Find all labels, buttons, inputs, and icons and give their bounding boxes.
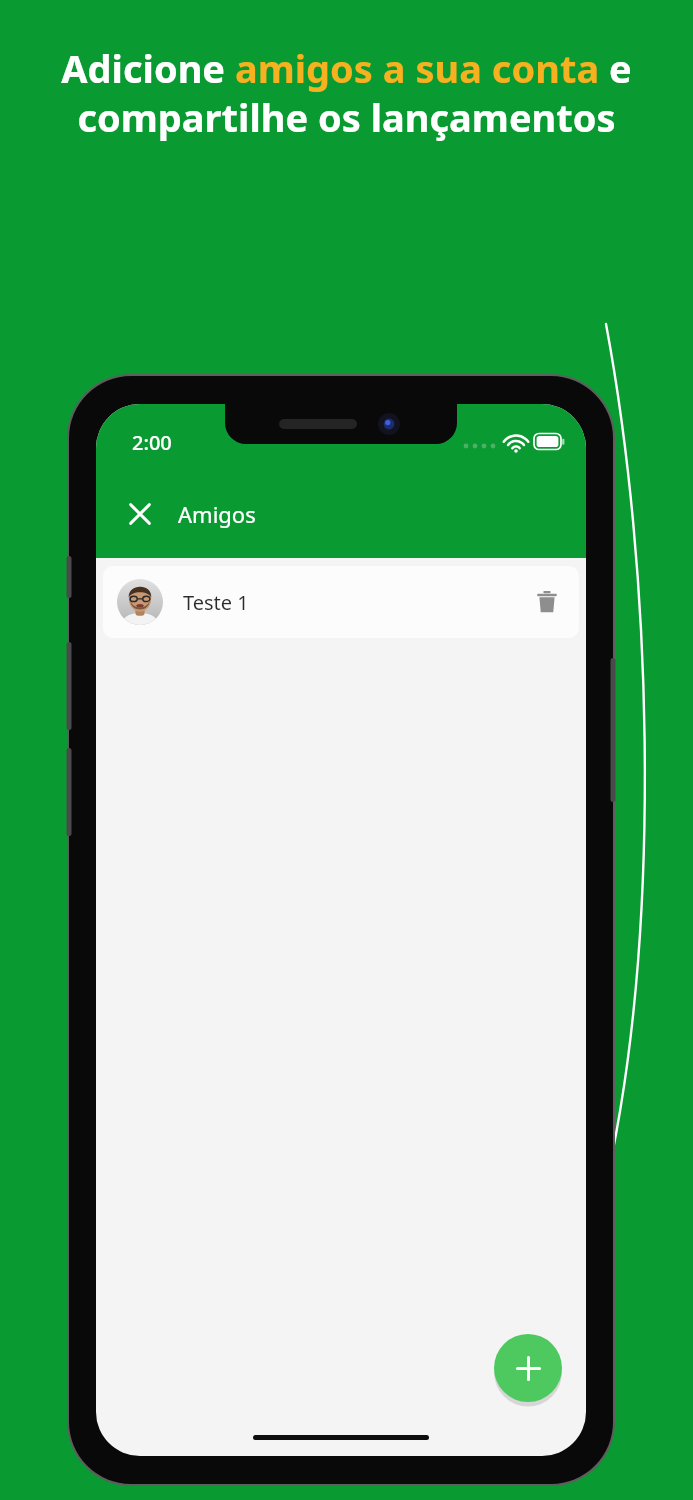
staticText: Amigos xyxy=(178,499,256,529)
button[interactable]: Adicionar amigo xyxy=(494,1334,562,1402)
staticText: Adicione amigos a sua conta e compartilh… xyxy=(30,42,663,143)
button[interactable]: Excluir amigo xyxy=(525,580,569,624)
button[interactable]: Fechar xyxy=(116,490,164,538)
button[interactable]: Teste 1 xyxy=(103,566,579,638)
staticText: 2:00 xyxy=(132,429,172,456)
staticText: Teste 1 xyxy=(183,589,249,616)
